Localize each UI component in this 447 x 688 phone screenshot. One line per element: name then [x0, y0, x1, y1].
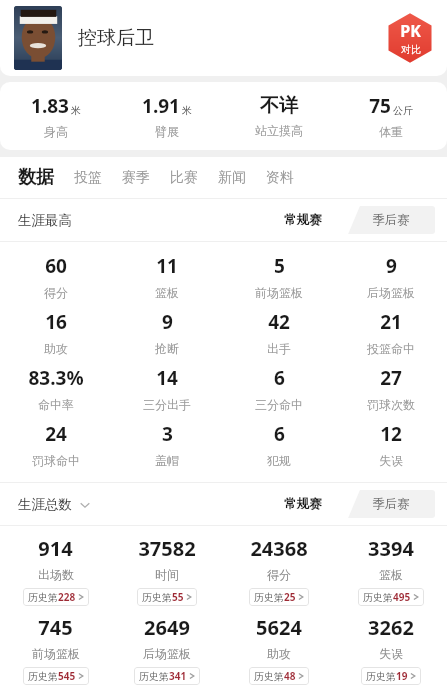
staticText: 犯规 [267, 453, 291, 468]
button[interactable]: 季后赛 [347, 206, 435, 234]
staticText: 后场篮板 [143, 646, 191, 661]
button[interactable]: 9 [111, 309, 223, 356]
staticText: 得分 [267, 567, 291, 582]
button[interactable]: 21 [335, 309, 447, 356]
staticText: 83.3% [28, 365, 84, 391]
staticText: 24 [45, 421, 67, 447]
staticText: PK [400, 20, 421, 42]
button[interactable]: 季后赛 [347, 490, 435, 518]
staticText: 2649 [144, 614, 190, 641]
button[interactable]: 24368 [223, 535, 335, 606]
staticText: 身高 [44, 124, 68, 139]
staticText: 不详 [260, 94, 298, 118]
staticText: 3 [162, 421, 173, 447]
staticText: 后场篮板 [367, 285, 415, 300]
staticText: 得分 [44, 285, 68, 300]
staticText: 失误 [379, 646, 403, 661]
staticText: 37582 [138, 535, 196, 562]
staticText: 11 [156, 253, 178, 279]
staticText: 生涯最高 [18, 212, 72, 229]
button[interactable]: 42 [223, 309, 335, 356]
button[interactable]: 历史第25 [249, 588, 309, 606]
button[interactable]: 历史第48 [249, 667, 309, 685]
button[interactable]: 745 [0, 614, 111, 685]
button[interactable]: 16 [0, 309, 111, 356]
staticText: 数据 [18, 166, 54, 189]
button[interactable]: 生涯最高 [18, 212, 72, 229]
button[interactable]: 3262 [335, 614, 447, 685]
button[interactable]: 27 [335, 365, 447, 412]
staticText: 常规赛 [284, 212, 322, 228]
staticText: 745 [38, 614, 73, 641]
staticText: 篮板 [155, 285, 179, 300]
button[interactable]: 投篮 [64, 163, 112, 193]
staticText: 投篮命中 [367, 341, 415, 356]
staticText: 米 [71, 104, 81, 117]
button[interactable]: 5624 [223, 614, 335, 685]
button[interactable]: 3394 [335, 535, 447, 606]
button[interactable]: 资料 [256, 163, 304, 193]
button[interactable]: PK 对比 [383, 11, 437, 65]
button[interactable]: 14 [111, 365, 223, 412]
button[interactable]: 比赛 [160, 163, 208, 193]
staticText: 对比 [401, 43, 421, 56]
button[interactable]: 914 [0, 535, 111, 606]
button[interactable]: 数据 [8, 160, 64, 195]
staticText: 16 [45, 309, 67, 335]
button[interactable]: 9 [335, 253, 447, 300]
staticText: 9 [386, 253, 397, 279]
button[interactable]: 12 [335, 421, 447, 468]
staticText: 3394 [368, 535, 414, 562]
staticText: 历史第545 [28, 669, 76, 683]
staticText: 新闻 [218, 169, 246, 187]
staticText: 历史第48 [254, 669, 296, 683]
button[interactable]: 5 [223, 253, 335, 300]
button[interactable]: 生涯总数 [18, 496, 91, 513]
staticText: 公斤 [393, 104, 413, 117]
button[interactable]: 24 [0, 421, 111, 468]
button[interactable]: 历史第55 [137, 588, 197, 606]
button[interactable]: 6 [223, 365, 335, 412]
button[interactable]: 赛季 [112, 163, 160, 193]
staticText: 914 [38, 535, 73, 562]
button[interactable]: 60 [0, 253, 111, 300]
staticText: 12 [380, 421, 402, 447]
staticText: 1.83 [31, 93, 69, 119]
button[interactable]: 11 [111, 253, 223, 300]
staticText: 投篮 [74, 169, 102, 187]
staticText: 60 [45, 253, 67, 279]
staticText: 季后赛 [372, 212, 410, 228]
button[interactable]: 2649 [111, 614, 223, 685]
staticText: 75 [369, 93, 391, 119]
staticText: 罚球次数 [367, 397, 415, 412]
staticText: 出手 [267, 341, 291, 356]
button[interactable]: 历史第545 [23, 667, 89, 685]
staticText: 比赛 [170, 169, 198, 187]
button[interactable]: 6 [223, 421, 335, 468]
button[interactable]: 历史第228 [23, 588, 89, 606]
button[interactable]: 83.3% [0, 365, 111, 412]
button[interactable]: 常规赛 [259, 206, 347, 234]
staticText: 6 [274, 365, 285, 391]
staticText: 罚球命中 [32, 453, 80, 468]
button[interactable]: 历史第495 [358, 588, 424, 606]
staticText: 历史第55 [142, 590, 184, 604]
button[interactable]: 3 [111, 421, 223, 468]
button[interactable]: 历史第19 [361, 667, 421, 685]
staticText: 5624 [256, 614, 302, 641]
staticText: 三分出手 [143, 397, 191, 412]
staticText: 站立摸高 [255, 123, 303, 138]
staticText: 24368 [250, 535, 308, 562]
staticText: 14 [156, 365, 178, 391]
staticText: 前场篮板 [32, 646, 80, 661]
staticText: 1.91 [142, 93, 180, 119]
staticText: 27 [380, 365, 402, 391]
staticText: 助攻 [44, 341, 68, 356]
button[interactable]: 37582 [111, 535, 223, 606]
button[interactable]: 常规赛 [259, 490, 347, 518]
staticText: 米 [182, 104, 192, 117]
button[interactable]: 历史第341 [134, 667, 200, 685]
staticText: 6 [274, 421, 285, 447]
staticText: 21 [380, 309, 402, 335]
button[interactable]: 新闻 [208, 163, 256, 193]
